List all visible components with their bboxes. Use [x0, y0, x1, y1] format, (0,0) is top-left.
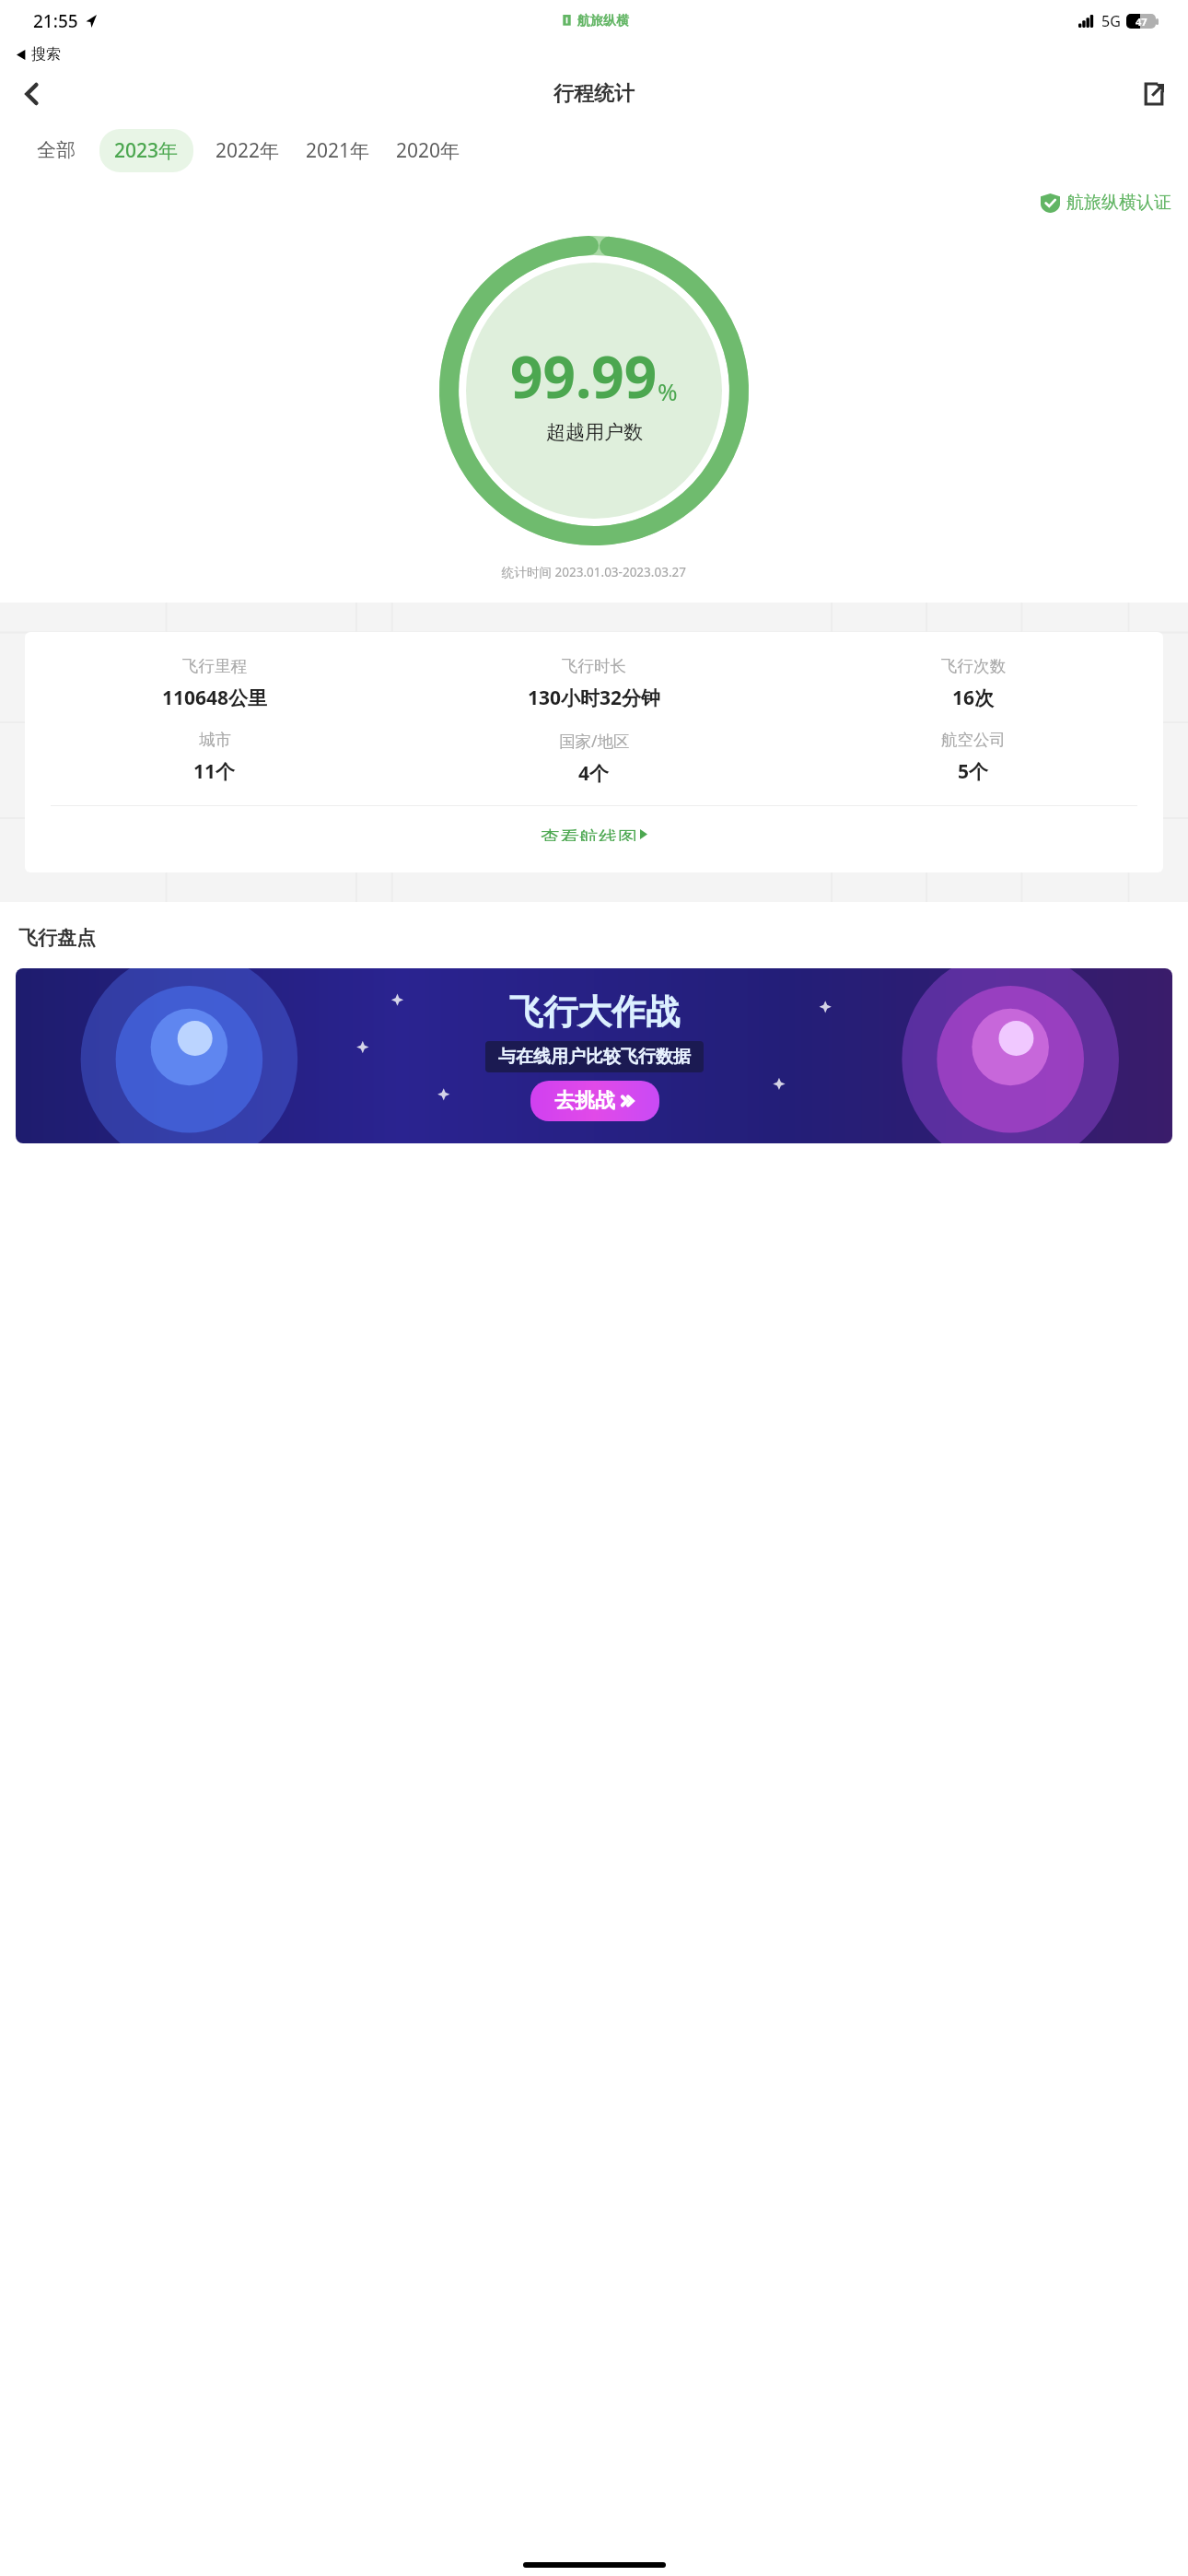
staticText: 110648公里	[162, 685, 268, 711]
button[interactable]: Share	[1133, 73, 1175, 115]
staticText: 行程统计	[553, 81, 635, 107]
staticText: %	[658, 375, 678, 407]
staticText: 16次	[952, 685, 995, 711]
button[interactable]: 2023年	[99, 129, 193, 172]
staticText: 4个	[578, 760, 610, 787]
staticText: 全部	[37, 138, 76, 162]
button[interactable]: 2022年	[214, 129, 282, 172]
staticText: 2020年	[396, 137, 460, 164]
staticText: 2022年	[215, 137, 280, 164]
staticText: 航旅纵横认证	[1066, 192, 1171, 214]
staticText: 航空公司	[941, 730, 1006, 750]
staticText: 国家/地区	[559, 730, 630, 752]
staticText: 2023年	[114, 137, 179, 164]
staticText: 查看航线图	[541, 826, 637, 841]
staticText: 飞行时长	[562, 656, 626, 676]
button[interactable]: 2020年	[394, 129, 462, 172]
staticText: 城市	[199, 730, 231, 750]
staticText: 飞行次数	[941, 656, 1006, 676]
staticText: 航旅纵横	[577, 13, 629, 29]
button[interactable]: 查看航线图	[25, 806, 1163, 861]
staticText: 21:55	[33, 9, 78, 33]
staticText: 5个	[958, 758, 989, 785]
staticText: 飞行盘点	[18, 926, 96, 950]
staticText: 5G	[1101, 11, 1121, 31]
staticText: 99.99	[510, 337, 658, 415]
staticText: 搜索	[31, 45, 61, 64]
button[interactable]: 去挑战	[530, 1081, 659, 1121]
staticText: 飞行大作战	[509, 990, 680, 1034]
button[interactable]: 飞行大作战 去挑战	[16, 968, 1172, 1143]
staticText: 飞行里程	[182, 656, 247, 676]
staticText: 超越用户数	[546, 420, 643, 444]
staticText: 与在线用户比较飞行数据	[498, 1046, 691, 1068]
staticText: 47	[1136, 15, 1147, 29]
staticText: 11个	[193, 758, 236, 785]
staticText: 统计时间 2023.01.03-2023.03.27	[0, 564, 1188, 580]
staticText: 2021年	[306, 137, 370, 164]
button[interactable]: 全部	[35, 130, 77, 170]
staticText: 130小时32分钟	[528, 685, 661, 711]
staticText: 去挑战	[554, 1088, 615, 1114]
button[interactable]: Back	[11, 73, 53, 115]
button[interactable]: 2021年	[304, 129, 372, 172]
